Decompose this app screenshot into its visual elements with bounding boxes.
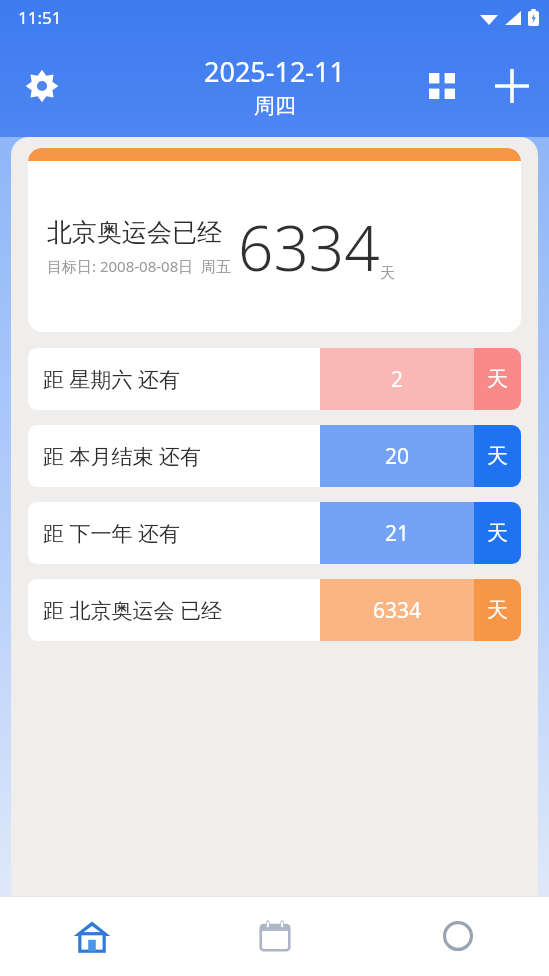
staticText: 距 本月结束 还有 [43,442,201,471]
staticText: 20 [385,442,410,471]
staticText: 天 [487,443,508,469]
staticText: 11:51 [18,6,62,29]
button[interactable]: 距 北京奥运会 已经 [28,579,521,641]
staticText: 目标日: 2008-08-08日 周五 [47,256,232,276]
button[interactable]: Profile [366,896,549,976]
staticText: 距 星期六 还有 [43,365,180,394]
button[interactable]: Home [0,896,183,976]
staticText: 天 [487,520,508,546]
button[interactable]: 距 本月结束 还有 [28,425,521,487]
button[interactable]: 北京奥运会已经 [28,148,521,332]
staticText: 北京奥运会已经 [47,217,222,248]
button[interactable]: Settings [14,58,70,114]
staticText: 21 [385,519,410,548]
staticText: 天 [487,366,508,392]
staticText: 天 [380,264,395,283]
button[interactable]: 距 下一年 还有 [28,502,521,564]
staticText: 6334 [373,596,422,625]
staticText: 6334 [238,205,380,289]
button[interactable]: Grid view [415,59,469,113]
staticText: 2 [391,365,404,394]
staticText: 周四 [254,93,296,119]
staticText: 2025-12-11 [204,53,345,90]
staticText: 天 [487,597,508,623]
button[interactable]: 距 星期六 还有 [28,348,521,410]
staticText: 距 北京奥运会 已经 [43,596,222,625]
button[interactable]: Calendar [183,896,366,976]
staticText: 距 下一年 还有 [43,519,180,548]
button[interactable]: Add [485,59,539,113]
